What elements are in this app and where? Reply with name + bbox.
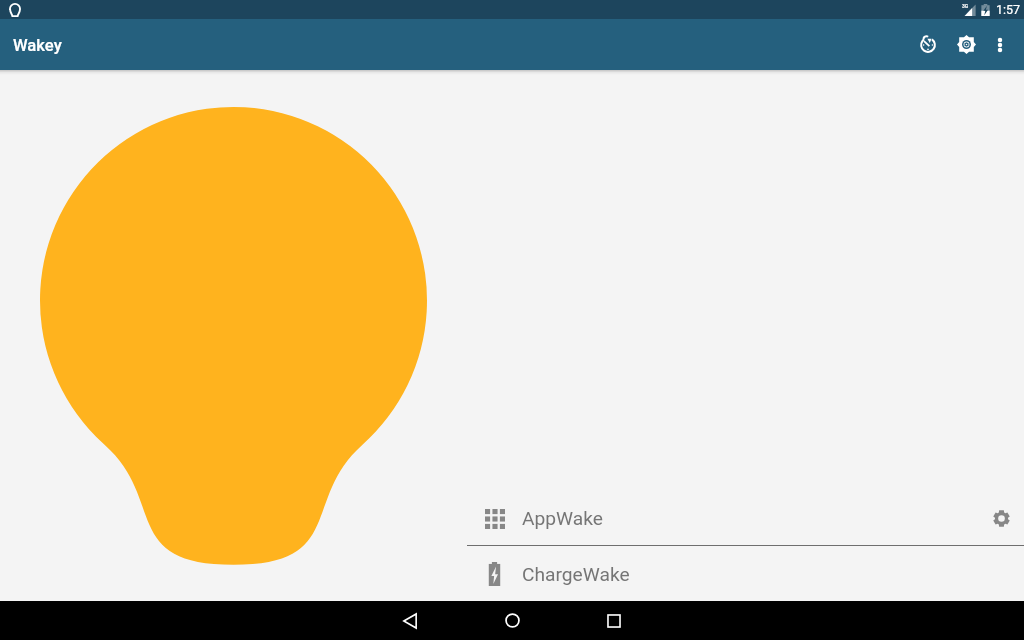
button[interactable]: AppWake	[467, 489, 1024, 545]
button[interactable]: More options	[982, 19, 1018, 70]
button[interactable]: Home	[461, 601, 563, 640]
button[interactable]: Brightness	[944, 19, 989, 70]
staticText: Wakey	[13, 36, 62, 55]
button[interactable]: Back	[359, 601, 461, 640]
staticText: ChargeWake	[522, 563, 630, 586]
staticText: 3G	[962, 3, 969, 9]
button[interactable]: ChargeWake	[467, 546, 1024, 601]
button[interactable]: Recents	[563, 601, 665, 640]
staticText: AppWake	[522, 507, 603, 530]
staticText: 1:57	[996, 2, 1021, 17]
button[interactable]: Timer	[906, 19, 950, 70]
button[interactable]: Settings	[978, 494, 1024, 540]
